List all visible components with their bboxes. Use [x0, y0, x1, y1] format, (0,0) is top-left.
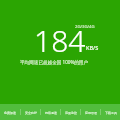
staticText: 2G/3G/4G [75, 24, 95, 30]
staticText: 流量监控 [65, 111, 77, 115]
button[interactable]: 免费加速 [0, 104, 20, 120]
staticText: 网络测速 [45, 111, 57, 115]
staticText: 应用管理 [85, 111, 97, 115]
button[interactable]: 下载工具 [101, 104, 120, 120]
staticText: 下载工具 [105, 111, 117, 115]
button[interactable]: 网络测速 [41, 104, 60, 120]
button[interactable]: 安全防护 [21, 104, 40, 120]
staticText: KB/S [86, 44, 99, 52]
staticText: 平均网速已超越全国 100%的用户 [20, 59, 89, 65]
staticText: 安全防护 [25, 111, 37, 115]
button[interactable]: 应用管理 [81, 104, 100, 120]
staticText: 184 [34, 20, 86, 61]
staticText: 免费加速 [4, 111, 16, 115]
button[interactable]: 流量监控 [61, 104, 80, 120]
